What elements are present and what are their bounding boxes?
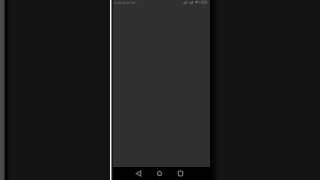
staticText: Sudarshan Sah (114, 1, 137, 5)
button[interactable]: Recents (174, 167, 187, 180)
button[interactable]: Back (132, 167, 145, 180)
button[interactable]: Home (153, 167, 166, 180)
